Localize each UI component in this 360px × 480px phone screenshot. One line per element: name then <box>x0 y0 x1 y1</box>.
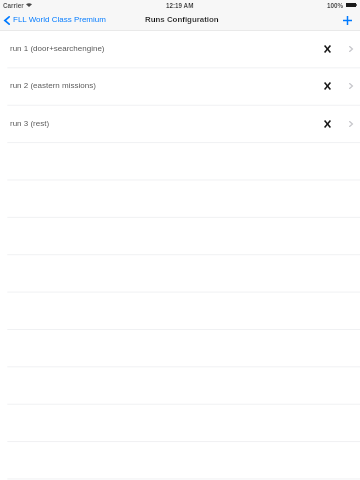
staticText: 12:19 AM <box>166 2 194 9</box>
staticText: run 1 (door+searchengine) <box>10 44 105 53</box>
staticText: Runs Configuration <box>145 15 219 24</box>
staticText: run 2 (eastern missions) <box>10 81 96 90</box>
button[interactable]: run 1 (door+searchengine) <box>0 30 360 67</box>
button[interactable]: Delete run 3 (rest) <box>319 110 336 138</box>
staticText: run 3 (rest) <box>10 119 50 128</box>
staticText: 100% <box>327 2 344 9</box>
staticText: Carrier <box>3 2 24 9</box>
button[interactable]: Add run <box>335 12 360 29</box>
button[interactable]: run 2 (eastern missions) <box>0 67 360 104</box>
button[interactable]: FLL World Class Premium <box>0 16 110 25</box>
button[interactable]: run 3 (rest) <box>0 105 360 142</box>
button[interactable]: Delete run 1 (door+searchengine) <box>319 35 336 63</box>
staticText: FLL World Class Premium <box>13 15 106 24</box>
button[interactable]: Delete run 2 (eastern missions) <box>319 72 336 100</box>
